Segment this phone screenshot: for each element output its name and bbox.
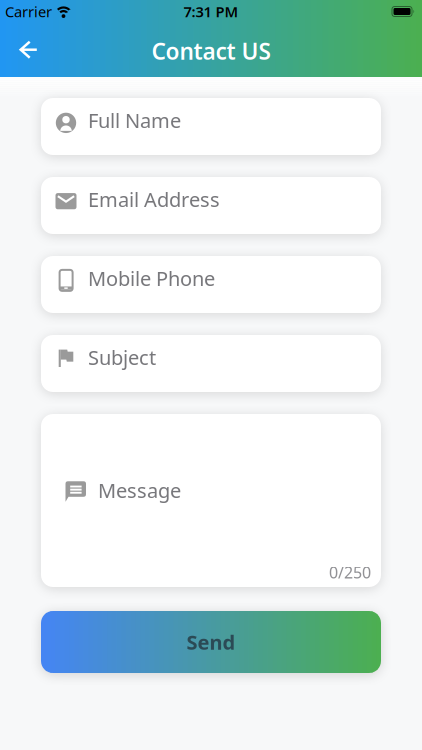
staticText: Email Address — [88, 186, 220, 213]
button[interactable]: Send — [41, 611, 381, 673]
staticText: Carrier — [5, 2, 52, 21]
staticText: 7:31 PM — [183, 2, 238, 21]
staticText: Contact US — [151, 36, 270, 66]
button[interactable]: Email Address — [41, 177, 381, 234]
button[interactable]: Message — [41, 414, 381, 587]
staticText: Full Name — [88, 107, 181, 134]
button[interactable]: Full Name — [41, 98, 381, 155]
staticText: 0/250 — [329, 562, 371, 583]
button[interactable]: Mobile Phone — [41, 256, 381, 313]
staticText: Subject — [88, 344, 156, 371]
staticText: Message — [98, 477, 181, 504]
staticText: Mobile Phone — [88, 265, 215, 292]
button[interactable]: Subject — [41, 335, 381, 392]
staticText: Send — [186, 629, 235, 655]
button[interactable]: Back — [8, 23, 50, 77]
